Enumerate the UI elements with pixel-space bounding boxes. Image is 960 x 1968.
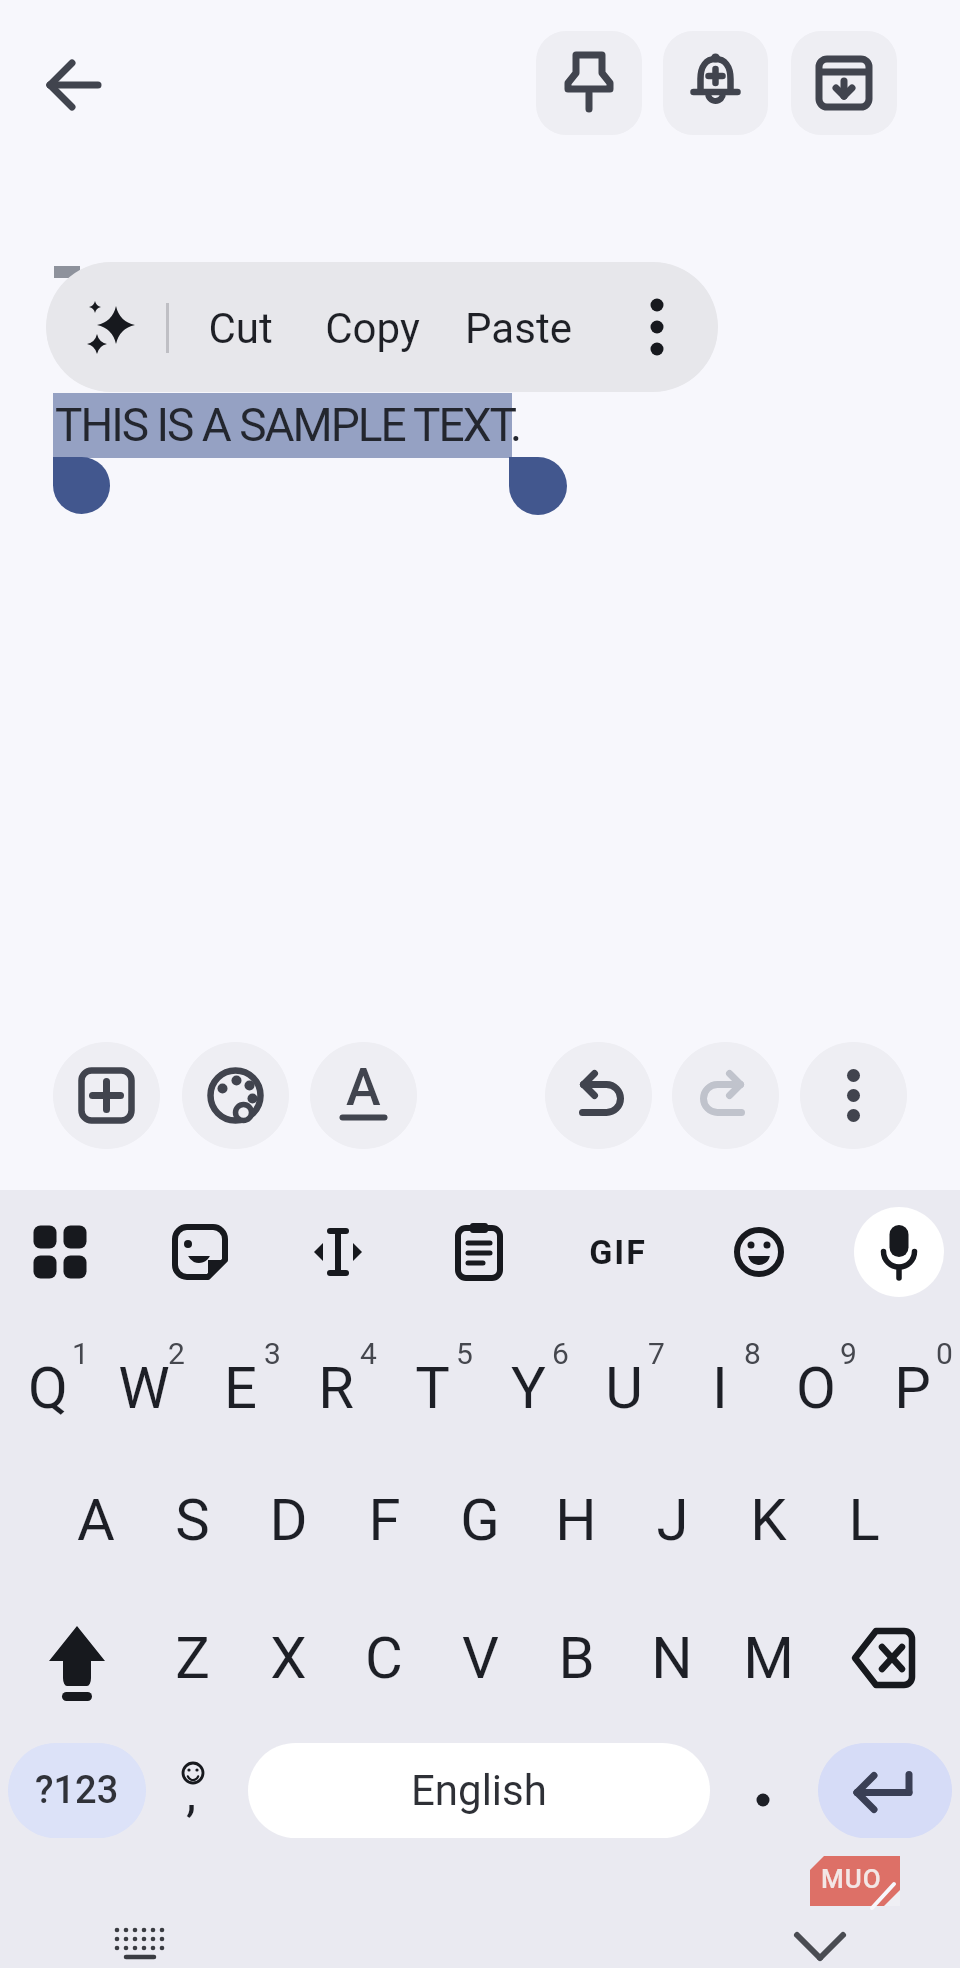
staticText: K <box>750 1486 787 1554</box>
button[interactable]: V <box>432 1615 528 1701</box>
staticText: X <box>270 1624 307 1692</box>
staticText: V <box>462 1624 499 1692</box>
button[interactable]: Cut <box>191 300 289 356</box>
button[interactable]: H <box>528 1477 624 1563</box>
staticText: GIF <box>589 1232 647 1272</box>
staticText: 6 <box>552 1336 569 1370</box>
button[interactable] <box>854 1207 944 1297</box>
staticText: 3 <box>264 1336 281 1370</box>
staticText: M <box>743 1624 794 1692</box>
button[interactable]: Z <box>144 1615 240 1701</box>
button[interactable]: X <box>240 1615 336 1701</box>
staticText: A <box>77 1486 115 1554</box>
staticText: 0 <box>936 1336 953 1370</box>
button[interactable] <box>162 1214 238 1290</box>
button[interactable] <box>300 1214 376 1290</box>
staticText: 9 <box>840 1336 857 1370</box>
button[interactable]: A <box>48 1477 144 1563</box>
button[interactable]: B <box>528 1615 624 1701</box>
staticText: Q <box>28 1354 68 1422</box>
button[interactable]: W <box>96 1345 192 1431</box>
staticText: O <box>796 1354 836 1422</box>
staticText: English <box>411 1766 547 1815</box>
button[interactable]: L <box>816 1477 912 1563</box>
button[interactable] <box>28 1612 128 1704</box>
button[interactable] <box>108 1918 172 1966</box>
staticText: N <box>651 1624 693 1692</box>
staticText: 7 <box>648 1336 665 1370</box>
button[interactable]: P <box>864 1345 960 1431</box>
button[interactable] <box>829 1612 939 1704</box>
button[interactable]: , <box>160 1743 230 1838</box>
button[interactable]: O <box>768 1345 864 1431</box>
button[interactable] <box>800 1042 907 1149</box>
button[interactable]: G <box>432 1477 528 1563</box>
staticText: T <box>415 1354 450 1422</box>
staticText: U <box>605 1354 643 1422</box>
button[interactable] <box>730 1743 796 1838</box>
staticText: Paste <box>465 304 572 353</box>
button[interactable]: N <box>624 1615 720 1701</box>
staticText: W <box>118 1354 170 1422</box>
button[interactable] <box>672 1042 779 1149</box>
button[interactable] <box>790 1918 850 1968</box>
staticText: B <box>558 1624 595 1692</box>
button[interactable]: J <box>624 1477 720 1563</box>
button[interactable]: M <box>720 1615 816 1701</box>
staticText: Z <box>175 1624 210 1692</box>
button[interactable]: Copy <box>312 300 432 356</box>
button[interactable]: E <box>192 1345 288 1431</box>
button[interactable]: ?123 <box>8 1743 146 1838</box>
button[interactable] <box>22 1214 98 1290</box>
button[interactable]: U <box>576 1345 672 1431</box>
button[interactable]: S <box>144 1477 240 1563</box>
button[interactable]: Y <box>480 1345 576 1431</box>
button[interactable]: F <box>336 1477 432 1563</box>
button[interactable] <box>625 295 689 359</box>
button[interactable]: K <box>720 1477 816 1563</box>
button[interactable] <box>663 31 768 135</box>
button[interactable]: C <box>336 1615 432 1701</box>
button[interactable]: R <box>288 1345 384 1431</box>
button[interactable] <box>509 457 567 515</box>
staticText: E <box>224 1354 257 1422</box>
staticText: 4 <box>360 1336 377 1370</box>
staticText: ?123 <box>35 1768 119 1813</box>
staticText: A <box>346 1057 381 1118</box>
button[interactable]: A <box>310 1042 417 1149</box>
button[interactable]: I <box>672 1345 768 1431</box>
staticText: L <box>848 1486 880 1554</box>
button[interactable]: Q <box>0 1345 96 1431</box>
staticText: P <box>894 1354 931 1422</box>
button[interactable] <box>53 457 110 514</box>
staticText: G <box>460 1486 500 1554</box>
button[interactable]: English <box>248 1743 710 1838</box>
button[interactable] <box>536 31 642 135</box>
button[interactable] <box>791 31 897 135</box>
staticText: H <box>555 1486 597 1554</box>
staticText: Cut <box>208 304 273 353</box>
staticText: S <box>175 1486 210 1554</box>
staticText: D <box>269 1486 308 1554</box>
staticText: 2 <box>168 1336 185 1370</box>
staticText: R <box>318 1354 354 1422</box>
button[interactable]: T <box>384 1345 480 1431</box>
button[interactable] <box>818 1743 952 1838</box>
button[interactable] <box>545 1042 652 1149</box>
staticText: I <box>712 1354 728 1422</box>
button[interactable] <box>38 49 110 121</box>
button[interactable]: GIF <box>580 1214 656 1290</box>
button[interactable]: D <box>240 1477 336 1563</box>
button[interactable] <box>80 294 146 360</box>
button[interactable] <box>441 1214 517 1290</box>
staticText: Y <box>511 1354 546 1422</box>
staticText: MUO <box>821 1864 882 1894</box>
button[interactable]: Paste <box>452 300 584 356</box>
button[interactable] <box>721 1214 797 1290</box>
staticText: 8 <box>744 1336 761 1370</box>
staticText: , <box>186 1763 197 1824</box>
staticText: C <box>365 1624 403 1692</box>
button[interactable] <box>182 1042 289 1149</box>
button[interactable] <box>53 1042 160 1149</box>
staticText: 5 <box>456 1336 473 1370</box>
